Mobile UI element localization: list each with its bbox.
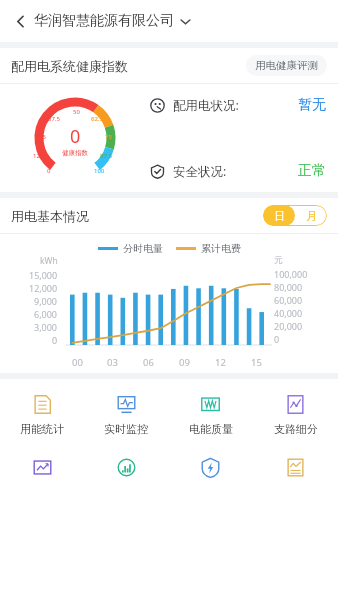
- staticText: 6,000: [34, 308, 58, 320]
- staticText: 62.5: [91, 115, 103, 123]
- staticText: 配用电状况:: [173, 97, 239, 114]
- button[interactable]: 配用电状况:: [150, 96, 326, 114]
- staticText: 25: [39, 133, 46, 141]
- staticText: 累计电费: [201, 242, 241, 255]
- staticText: 正常: [298, 162, 326, 180]
- staticText: 03: [107, 356, 118, 369]
- button[interactable]: 华润智慧能源有限公司: [34, 12, 191, 30]
- staticText: 用能统计: [20, 422, 64, 436]
- staticText: 50: [73, 108, 80, 116]
- staticText: 3,000: [34, 321, 58, 333]
- staticText: 0: [52, 334, 58, 346]
- staticText: 12,000: [29, 282, 58, 294]
- staticText: 配用电系统健康指数: [11, 58, 128, 74]
- staticText: 0: [70, 124, 81, 149]
- button[interactable]: 实时监控: [84, 391, 168, 438]
- staticText: 60,000: [274, 294, 303, 306]
- staticText: 日: [274, 209, 285, 223]
- button[interactable]: 支路细分: [253, 391, 338, 438]
- staticText: 9,000: [34, 295, 58, 307]
- staticText: 20,000: [274, 320, 303, 332]
- button[interactable]: 日: [263, 205, 327, 226]
- button[interactable]: Trend analysis: [0, 454, 84, 481]
- staticText: 健康指数: [62, 149, 88, 157]
- staticText: 80,000: [274, 281, 303, 293]
- staticText: 用电健康评测: [255, 59, 318, 72]
- staticText: 12: [215, 356, 226, 369]
- button[interactable]: Energy overview: [84, 454, 168, 481]
- staticText: 分时电量: [123, 242, 163, 255]
- staticText: 元: [274, 255, 283, 266]
- staticText: 87.5: [100, 152, 112, 160]
- staticText: 09: [179, 356, 190, 369]
- staticText: 支路细分: [274, 422, 318, 436]
- staticText: 月: [306, 209, 317, 223]
- button[interactable]: 电能质量: [168, 391, 253, 438]
- button[interactable]: 日: [263, 205, 295, 226]
- button[interactable]: 用能统计: [0, 391, 84, 438]
- staticText: 0: [274, 333, 280, 345]
- button[interactable]: Back: [8, 9, 32, 33]
- staticText: 暂无: [298, 96, 326, 114]
- staticText: 75: [105, 133, 112, 141]
- button[interactable]: 月: [295, 205, 327, 226]
- button[interactable]: Safety: [168, 454, 253, 481]
- button[interactable]: Reports: [253, 454, 338, 481]
- staticText: 华润智慧能源有限公司: [34, 12, 174, 30]
- staticText: 37.5: [48, 115, 60, 123]
- staticText: 安全状况:: [173, 163, 227, 180]
- staticText: 40,000: [274, 307, 303, 319]
- staticText: 电能质量: [189, 422, 233, 436]
- staticText: 00: [72, 356, 83, 369]
- staticText: 15,000: [29, 269, 58, 281]
- staticText: 0: [47, 167, 51, 175]
- staticText: 100: [94, 167, 105, 175]
- staticText: 06: [143, 356, 154, 369]
- button[interactable]: 安全状况:: [150, 162, 326, 180]
- button[interactable]: 用电健康评测: [246, 55, 327, 76]
- staticText: 100,000: [274, 268, 308, 280]
- staticText: kWh: [40, 255, 58, 267]
- staticText: 实时监控: [104, 422, 148, 436]
- staticText: 12.5: [33, 152, 45, 160]
- staticText: 15: [251, 356, 262, 369]
- staticText: 用电基本情况: [11, 208, 89, 224]
